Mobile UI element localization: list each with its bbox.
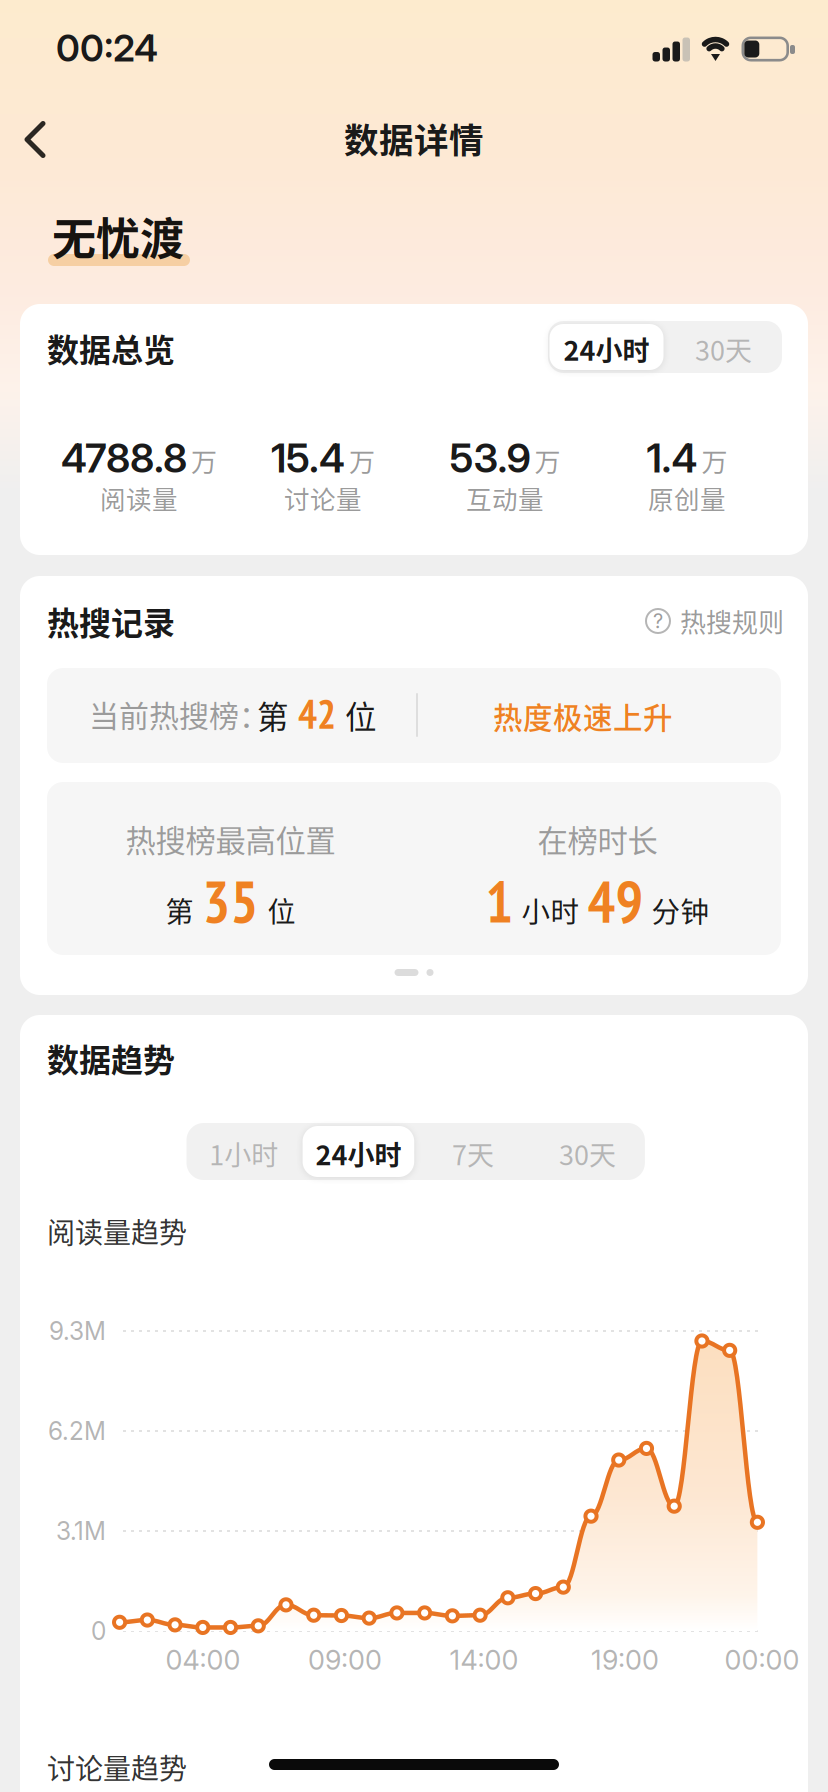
staticText: 04:00	[165, 1644, 240, 1676]
staticText: 19:00	[591, 1644, 659, 1676]
staticText: ?	[653, 609, 663, 633]
button[interactable]: 30天	[530, 1123, 645, 1180]
staticText: 第	[165, 890, 193, 930]
staticText: 小时	[521, 889, 579, 931]
staticText: 35	[202, 863, 258, 939]
staticText: 热搜规则	[680, 602, 784, 640]
staticText: 00:24	[56, 26, 158, 70]
button[interactable]: 热搜规则	[645, 602, 784, 640]
staticText: 热搜记录	[47, 598, 175, 644]
button[interactable]: 30天	[665, 321, 782, 373]
staticText: 万	[349, 442, 375, 479]
staticText: 无忧渡	[52, 204, 184, 268]
button[interactable]: 24小时	[301, 1123, 416, 1180]
staticText: 万	[701, 442, 727, 479]
staticText: 3.1M	[56, 1516, 106, 1546]
staticText: 09:00	[308, 1644, 382, 1676]
staticText: 24小时	[563, 329, 649, 369]
staticText: 阅读量	[100, 479, 178, 516]
staticText: 万	[191, 442, 217, 479]
staticText: 当前热搜榜：	[89, 692, 269, 736]
staticText: 4788.8	[61, 434, 187, 482]
staticText: 数据趋势	[47, 1035, 175, 1081]
button[interactable]: 返回	[5, 101, 65, 177]
staticText: 1	[485, 863, 513, 939]
staticText: 数据总览	[47, 325, 175, 371]
staticText: 热搜榜最高位置	[125, 817, 335, 861]
staticText: 7天	[452, 1134, 494, 1173]
staticText: 第	[257, 692, 289, 738]
staticText: 14:00	[449, 1644, 518, 1676]
staticText: 00:00	[724, 1644, 799, 1676]
staticText: 49	[587, 863, 643, 939]
staticText: 互动量	[466, 479, 544, 516]
staticText: 6.2M	[48, 1416, 106, 1446]
staticText: 24小时	[315, 1134, 401, 1173]
staticText: 数据详情	[344, 113, 484, 163]
staticText: 30天	[559, 1134, 616, 1173]
staticText: 分钟	[651, 889, 709, 931]
staticText: 讨论量趋势	[47, 1747, 187, 1787]
staticText: 讨论量	[284, 479, 362, 516]
staticText: 阅读量趋势	[47, 1211, 187, 1251]
staticText: 位	[267, 890, 295, 930]
staticText: 30天	[695, 329, 752, 369]
staticText: 53.9	[449, 434, 530, 482]
staticText: 9.3M	[49, 1316, 106, 1346]
staticText: 15.4	[271, 434, 345, 482]
staticText: 位	[345, 692, 377, 738]
staticText: 在榜时长	[537, 817, 657, 861]
staticText: 0	[91, 1616, 106, 1646]
staticText: 42	[298, 688, 336, 740]
staticText: 万	[534, 442, 560, 479]
staticText: 原创量	[648, 479, 726, 516]
staticText: 热度极速上升	[493, 695, 673, 737]
button[interactable]: 1小时	[186, 1123, 301, 1180]
button[interactable]: 24小时	[548, 321, 665, 373]
button[interactable]: 7天	[416, 1123, 530, 1180]
staticText: 1.4	[646, 434, 697, 482]
staticText: 1小时	[209, 1134, 278, 1173]
